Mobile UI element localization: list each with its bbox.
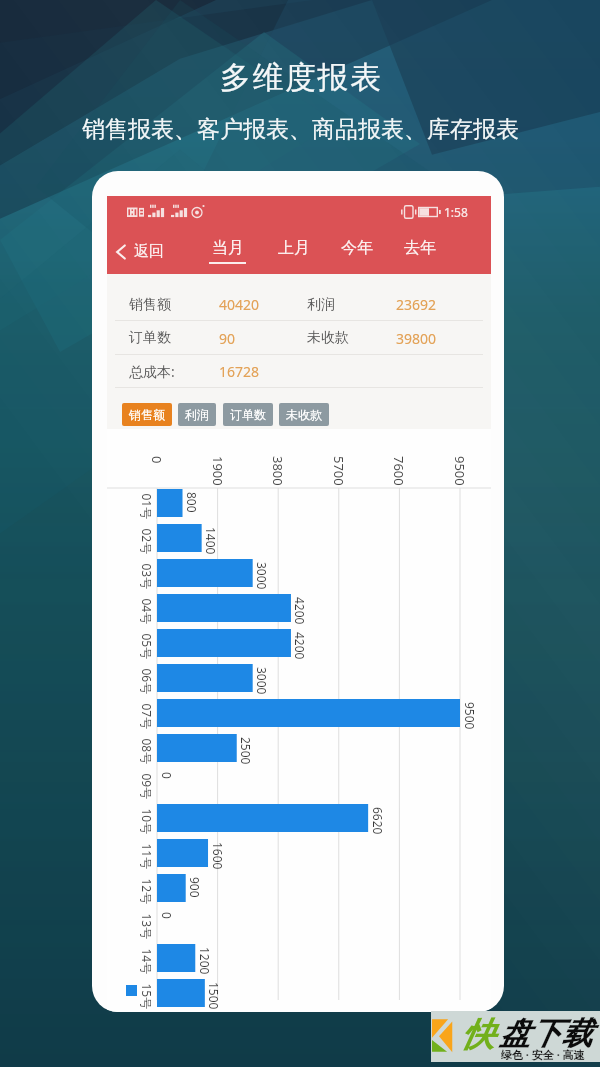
button[interactable]: 订单数 <box>107 321 491 355</box>
staticText: 当月 <box>212 238 244 258</box>
staticText: 销售额 <box>129 296 171 314</box>
button[interactable]: 返回 <box>107 233 174 270</box>
staticText: 绿色 · 安全 · 高速 <box>501 1047 585 1062</box>
staticText: 去年 <box>404 238 436 258</box>
button[interactable]: 订单数 <box>223 403 273 426</box>
staticText: 订单数 <box>129 329 171 347</box>
button[interactable]: 快盘下载 <box>431 1011 600 1062</box>
staticText: 39800 <box>396 329 437 348</box>
staticText: 40420 <box>219 295 260 314</box>
staticText: 销售报表、客户报表、商品报表、库存报表 <box>82 115 519 144</box>
staticText: 快 <box>461 1014 494 1056</box>
staticText: 利润 <box>307 296 335 314</box>
staticText: 多维度报表 <box>219 58 382 97</box>
button[interactable]: 当月 <box>204 233 251 269</box>
staticText: 未收款 <box>307 329 349 347</box>
staticText: 16728 <box>219 362 260 381</box>
button[interactable]: 销售额 <box>107 274 491 321</box>
staticText: 返回 <box>134 242 164 261</box>
button[interactable]: 今年 <box>333 233 380 269</box>
staticText: 90 <box>219 329 236 348</box>
button[interactable]: 上月 <box>270 233 317 269</box>
staticText: 1:58 <box>444 204 468 220</box>
staticText: 总成本: <box>129 362 175 381</box>
staticText: 销售额 <box>129 407 165 422</box>
staticText: 盘下载 <box>499 1014 592 1053</box>
button[interactable]: 总成本: <box>107 355 491 388</box>
staticText: 上月 <box>278 238 310 258</box>
staticText: 未收款 <box>286 407 322 422</box>
staticText: 23692 <box>396 295 437 314</box>
staticText: 今年 <box>341 238 373 258</box>
staticText: 利润 <box>185 407 209 422</box>
button[interactable]: 去年 <box>396 233 443 269</box>
staticText: 订单数 <box>230 407 266 422</box>
button[interactable]: 销售额 <box>122 403 172 426</box>
button[interactable]: 未收款 <box>279 403 329 426</box>
button[interactable]: 利润 <box>178 403 216 426</box>
